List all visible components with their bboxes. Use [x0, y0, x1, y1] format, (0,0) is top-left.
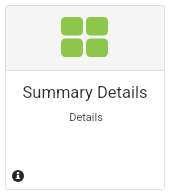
button[interactable]: Summary Details [5, 5, 165, 190]
staticText: Details [7, 111, 165, 124]
staticText: Summary Details [5, 83, 165, 102]
button[interactable]: Info [12, 170, 24, 182]
